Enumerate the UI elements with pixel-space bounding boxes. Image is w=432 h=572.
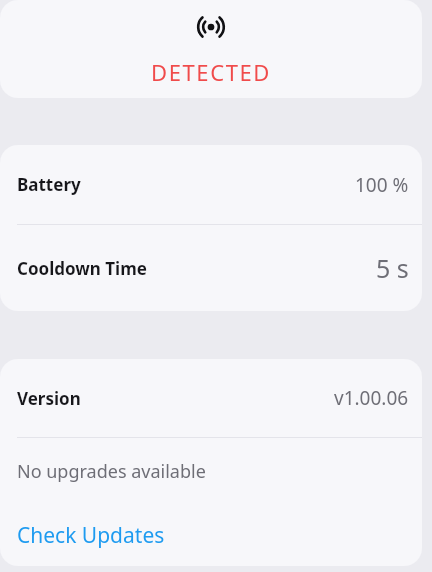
- staticText: No upgrades available: [17, 459, 206, 484]
- staticText: Version: [17, 387, 81, 410]
- staticText: Cooldown Time: [17, 257, 147, 280]
- button[interactable]: Version: [0, 359, 422, 437]
- button[interactable]: Battery: [0, 145, 422, 224]
- button[interactable]: Cooldown Time: [0, 225, 422, 311]
- staticText: 100 %: [355, 172, 409, 198]
- staticText: Check Updates: [17, 521, 165, 550]
- staticText: DETECTED: [151, 57, 271, 87]
- staticText: 5 s: [376, 251, 409, 285]
- other: Signal detected: [195, 11, 227, 43]
- staticText: Battery: [17, 173, 81, 196]
- button[interactable]: Check Updates: [0, 504, 422, 566]
- staticText: v1.00.06: [334, 385, 409, 411]
